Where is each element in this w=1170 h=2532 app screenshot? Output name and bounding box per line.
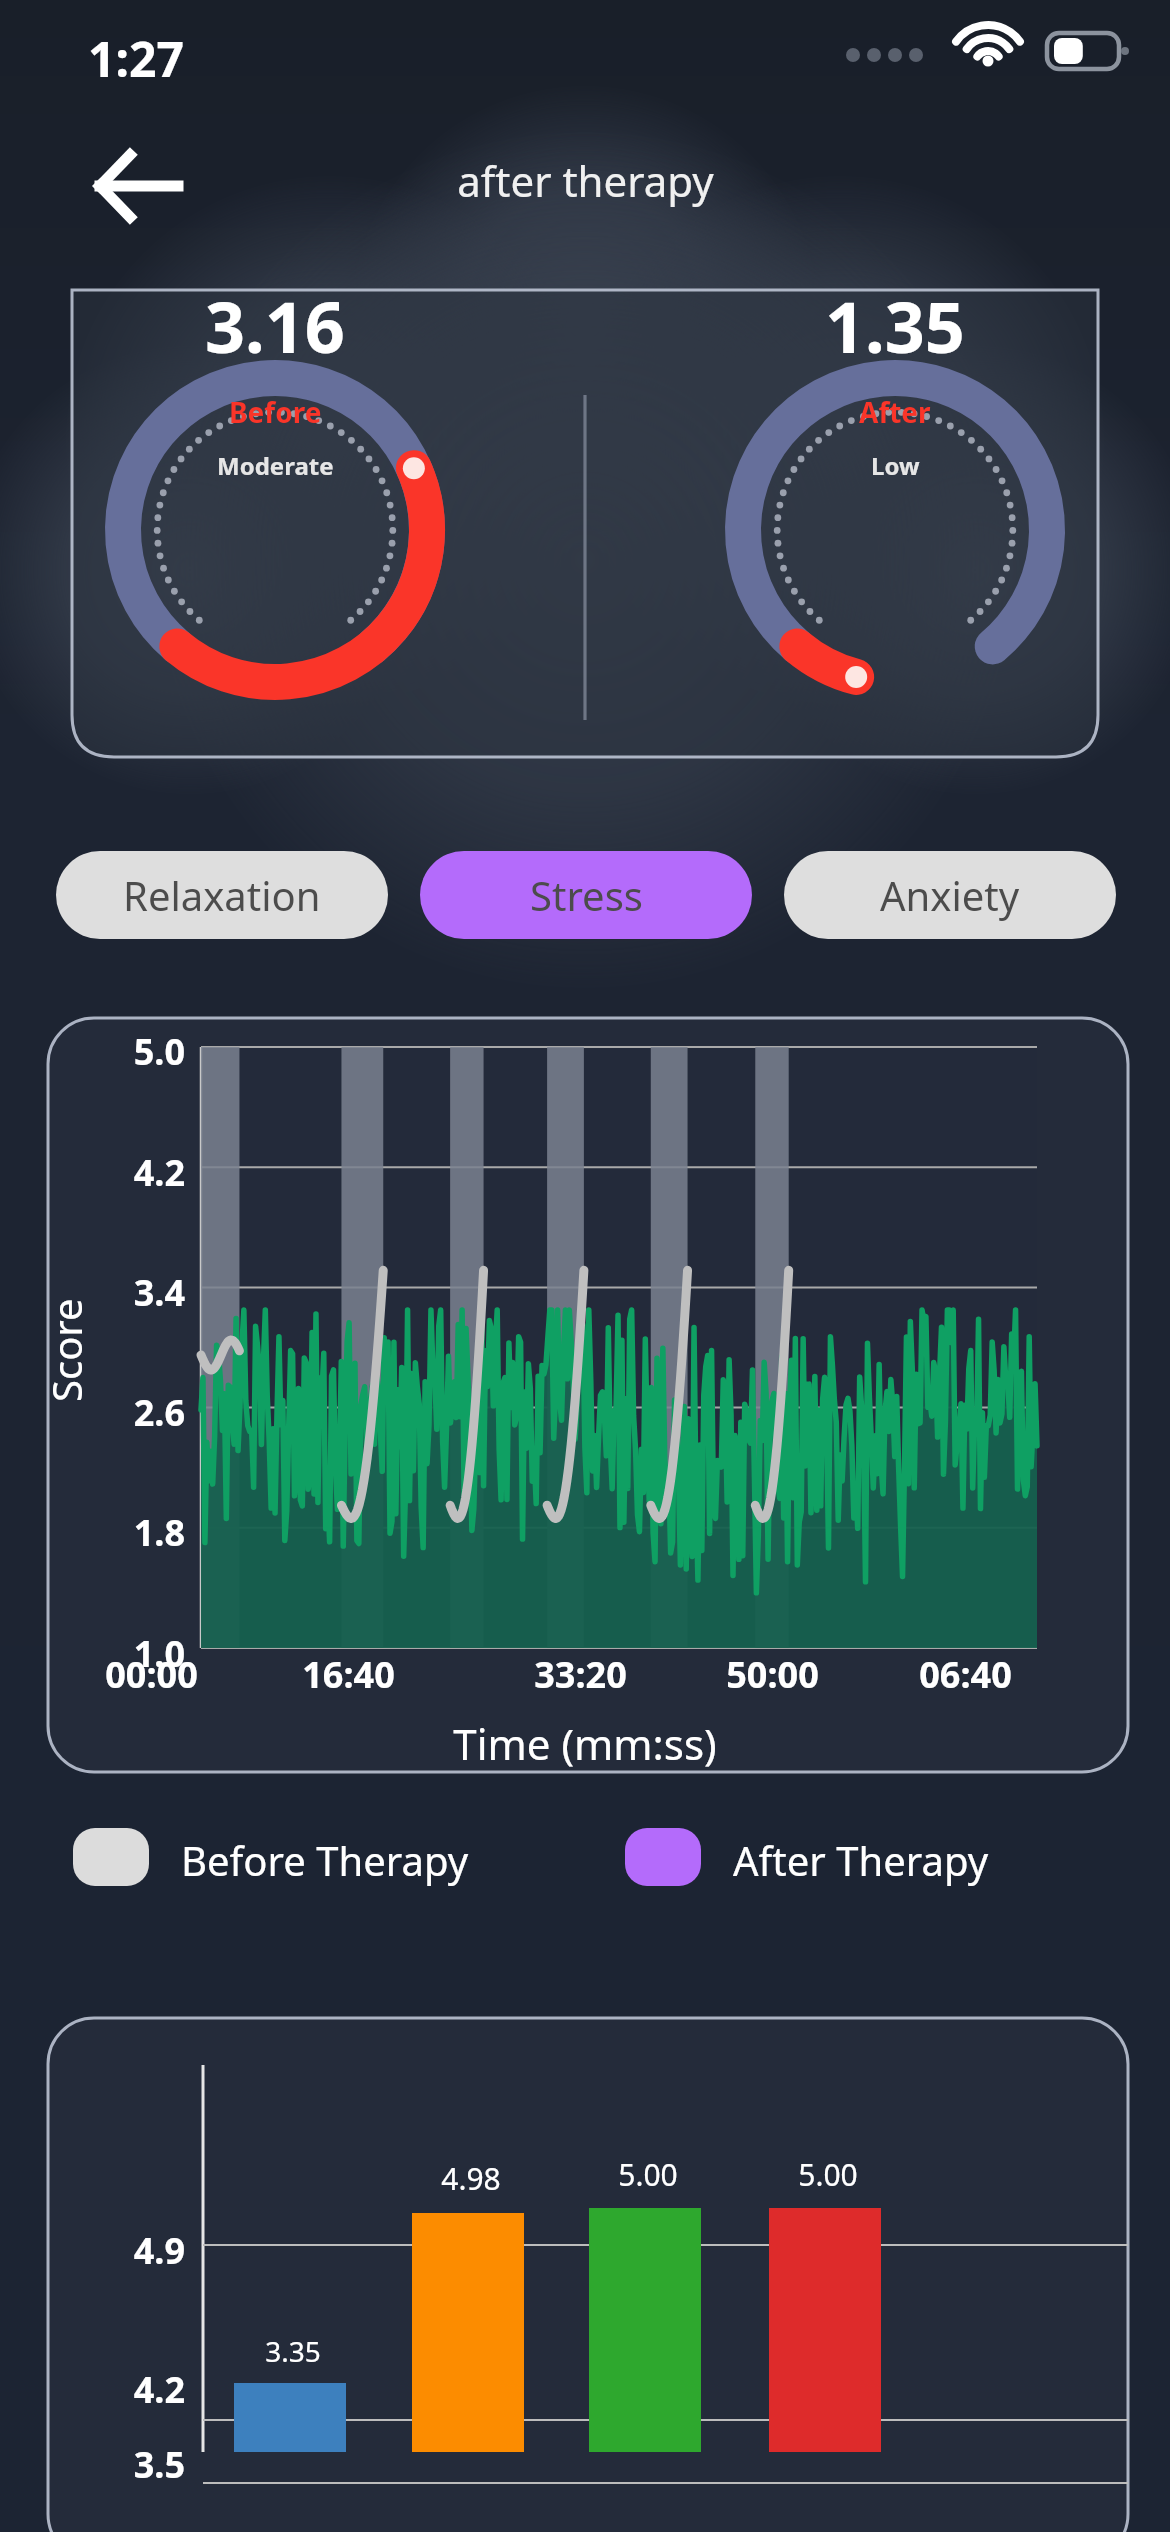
- staticText: After: [859, 393, 931, 431]
- staticText: 1:27: [88, 26, 184, 91]
- staticText: 4.98: [441, 2158, 501, 2199]
- staticText: 5.00: [798, 2154, 858, 2195]
- staticText: 16:40: [302, 1650, 395, 1699]
- staticText: 4.2: [133, 1148, 185, 1197]
- staticText: Moderate: [217, 449, 334, 482]
- staticText: Relaxation: [123, 868, 321, 922]
- staticText: 3.16: [205, 278, 345, 373]
- staticText: Stress: [530, 868, 643, 922]
- button[interactable]: Before Therapy: [181, 1833, 469, 1887]
- staticText: 1.8: [133, 1508, 185, 1557]
- button[interactable]: 1:27: [88, 26, 184, 91]
- staticText: Score: [39, 1298, 93, 1402]
- staticText: 50:00: [726, 1650, 819, 1699]
- staticText: 00:00: [105, 1650, 198, 1699]
- staticText: 33:20: [534, 1650, 627, 1699]
- staticText: 1.35: [825, 278, 965, 373]
- staticText: 5.0: [133, 1027, 185, 1076]
- staticText: Before Therapy: [181, 1833, 469, 1887]
- button[interactable]: Stress: [420, 851, 752, 939]
- button[interactable]: Anxiety: [784, 851, 1116, 939]
- staticText: Before: [229, 393, 322, 431]
- button[interactable]: Back: [66, 144, 166, 234]
- staticText: Anxiety: [880, 868, 1020, 922]
- staticText: 1.0: [133, 1629, 185, 1678]
- staticText: 4.9: [133, 2226, 185, 2275]
- staticText: 5.00: [618, 2154, 678, 2195]
- staticText: 3.4: [133, 1268, 185, 1317]
- staticText: 3.35: [265, 2332, 321, 2370]
- staticText: 3.5: [133, 2440, 185, 2489]
- button[interactable]: After Therapy: [733, 1833, 989, 1887]
- staticText: 4.2: [133, 2365, 185, 2414]
- staticText: 06:40: [919, 1650, 1012, 1699]
- staticText: Low: [871, 449, 920, 482]
- staticText: After Therapy: [733, 1833, 989, 1887]
- button[interactable]: Relaxation: [56, 851, 388, 939]
- staticText: Time (mm:ss): [453, 1715, 717, 1772]
- staticText: 2.6: [133, 1388, 185, 1437]
- staticText: after therapy: [457, 152, 714, 209]
